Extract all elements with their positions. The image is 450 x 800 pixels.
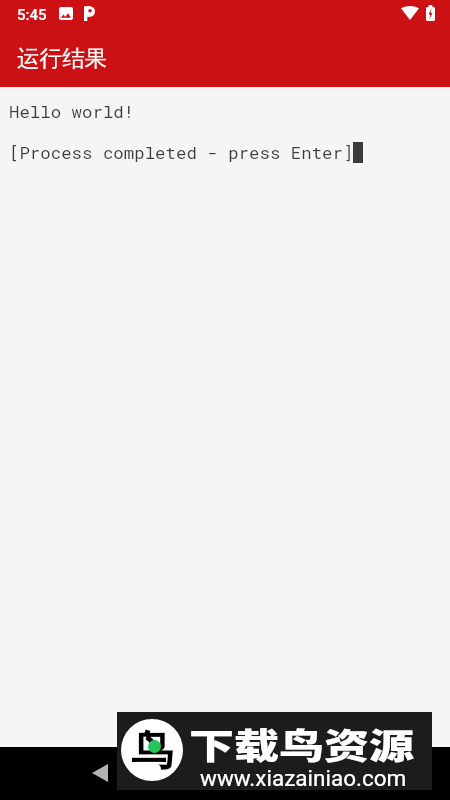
staticText: www.xiazainiao.com bbox=[200, 765, 407, 791]
button[interactable]: Back bbox=[76, 749, 124, 797]
staticText: 鸟 bbox=[131, 725, 173, 778]
staticText: 下载鸟资源 bbox=[189, 718, 415, 769]
staticText: 5:45 bbox=[17, 6, 47, 24]
staticText: 运行结果 bbox=[17, 44, 107, 72]
staticText: Hello world! [Process completed - press … bbox=[9, 100, 354, 164]
